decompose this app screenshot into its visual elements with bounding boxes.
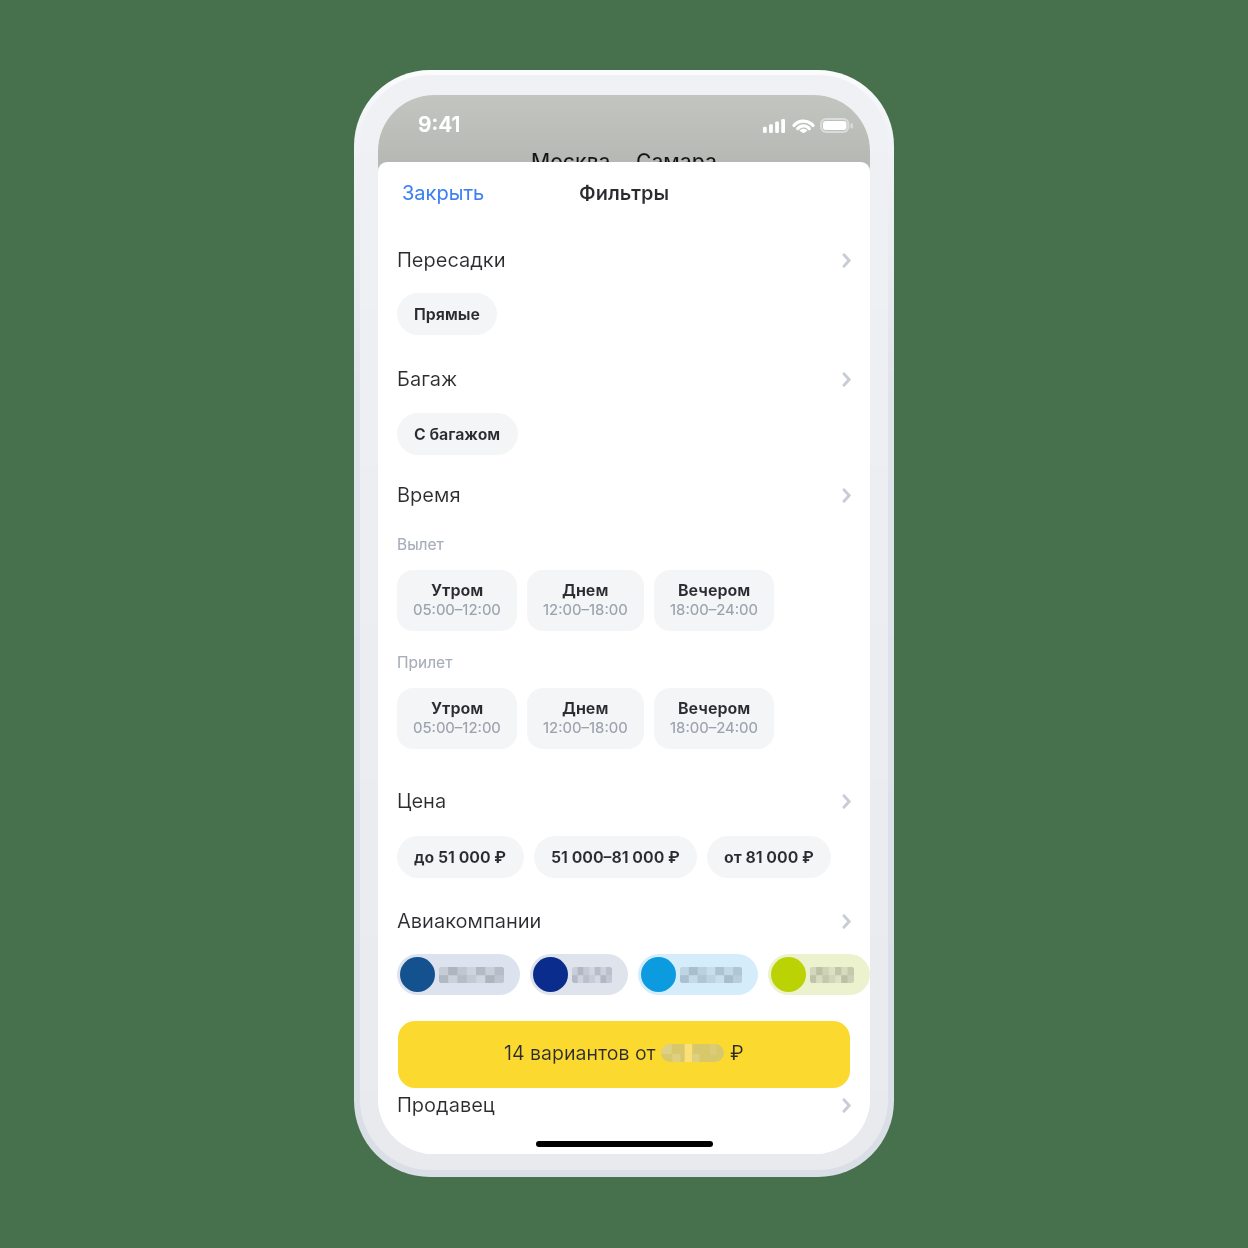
button[interactable]: Пересадки	[378, 237, 870, 283]
staticText: Днем	[562, 580, 609, 599]
staticText: от 81 000 ₽	[724, 848, 814, 867]
staticText: Продавец	[397, 1093, 495, 1117]
button[interactable]: Авиакомпании	[378, 898, 870, 944]
staticText: Вылет	[397, 535, 444, 554]
button[interactable]: Багаж	[378, 356, 870, 402]
staticText: 12:00–18:00	[543, 600, 628, 618]
staticText: Прилет	[397, 653, 453, 672]
button[interactable]: от 81 000 ₽	[707, 836, 831, 878]
button[interactable]: Вечером	[654, 688, 774, 749]
button[interactable]: Цена	[378, 778, 870, 824]
staticText: Фильтры	[579, 181, 670, 205]
staticText: Закрыть	[402, 181, 485, 205]
button[interactable]: 51 000–81 000 ₽	[534, 836, 697, 878]
staticText: Вечером	[678, 580, 751, 599]
staticText: ₽	[730, 1041, 744, 1065]
button[interactable]: Закрыть	[378, 173, 509, 213]
button[interactable]: Airline filter	[530, 954, 628, 995]
staticText: Утром	[431, 698, 484, 717]
button[interactable]: Прямые	[397, 293, 497, 335]
staticText: Днем	[562, 698, 609, 717]
button[interactable]: Утром	[397, 688, 517, 749]
staticText: Время	[397, 483, 461, 507]
staticText: 18:00–24:00	[670, 718, 758, 736]
button[interactable]: Airline filter	[397, 954, 520, 995]
staticText: Прямые	[414, 305, 480, 324]
staticText: С багажом	[414, 425, 501, 444]
button[interactable]: до 51 000 ₽	[397, 836, 524, 878]
button[interactable]: Airline filter	[638, 954, 758, 995]
button[interactable]: Утром	[397, 570, 517, 631]
staticText: Багаж	[397, 367, 458, 391]
staticText: 51 000–81 000 ₽	[551, 848, 680, 867]
button[interactable]: 14 вариантов от	[398, 1021, 850, 1088]
staticText: Утром	[431, 580, 484, 599]
button[interactable]: Время	[378, 472, 870, 518]
staticText: Москва	[531, 149, 611, 174]
staticText: Цена	[397, 789, 447, 813]
staticText: 14 вариантов от	[504, 1041, 656, 1065]
staticText: 05:00–12:00	[413, 600, 501, 618]
button[interactable]: Днем	[527, 570, 644, 631]
staticText: Самара	[636, 149, 717, 174]
button[interactable]: Продавец	[378, 1082, 870, 1128]
button[interactable]: Днем	[527, 688, 644, 749]
button[interactable]: Airline filter	[768, 954, 870, 995]
staticText: Авиакомпании	[397, 909, 542, 933]
staticText: Пересадки	[397, 248, 506, 272]
staticText: 18:00–24:00	[670, 600, 758, 618]
staticText: 05:00–12:00	[413, 718, 501, 736]
staticText: до 51 000 ₽	[414, 848, 507, 867]
staticText: Вечером	[678, 698, 751, 717]
staticText: 9:41	[418, 112, 461, 137]
button[interactable]: Вечером	[654, 570, 774, 631]
staticText: 12:00–18:00	[543, 718, 628, 736]
button[interactable]: С багажом	[397, 413, 518, 455]
